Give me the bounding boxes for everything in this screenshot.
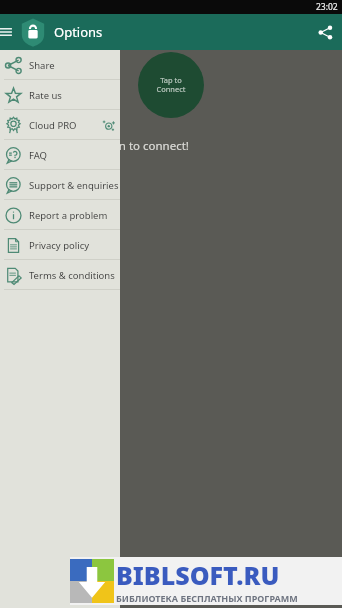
staticText: Privacy policy — [29, 239, 90, 252]
staticText: Tap the green button to connect! — [12, 138, 189, 154]
staticText: 23:02 — [316, 1, 338, 13]
staticText: BIBLSOFT.RU — [116, 558, 280, 592]
staticText: Terms & conditions — [29, 269, 115, 282]
staticText: FAQ — [29, 149, 48, 162]
button[interactable]: Support & enquiries — [0, 170, 120, 200]
staticText: БИБЛИОТЕКА БЕСПЛАТНЫХ ПРОГРАММ — [116, 592, 298, 604]
button[interactable]: Share — [308, 14, 342, 50]
button[interactable]: Cloud PRO — [0, 110, 120, 140]
button[interactable]: Terms & conditions — [0, 260, 120, 290]
staticText: Options — [54, 23, 103, 41]
staticText: Cloud PRO — [29, 119, 77, 132]
staticText: Tap to Connect — [156, 75, 186, 95]
button[interactable]: Tap to Connect — [138, 52, 204, 118]
button[interactable]: Report a problem — [0, 200, 120, 230]
button[interactable]: Privacy policy — [0, 230, 120, 260]
staticText: Support & enquiries — [29, 179, 119, 192]
staticText: Rate us — [29, 89, 62, 102]
staticText: Share — [29, 59, 55, 72]
button[interactable]: Share — [0, 50, 120, 80]
button[interactable]: Open navigation menu — [0, 14, 20, 50]
button[interactable]: FAQ — [0, 140, 120, 170]
staticText: Report a problem — [29, 209, 108, 222]
button[interactable]: Rate us — [0, 80, 120, 110]
